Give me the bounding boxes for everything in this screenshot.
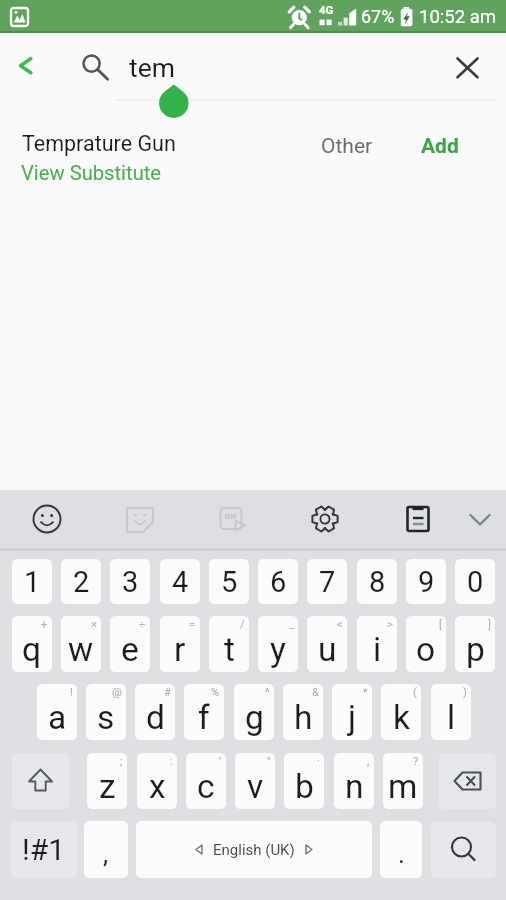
button[interactable]: Backspace [439,753,496,809]
staticText: r [174,630,186,669]
button[interactable]: " [235,753,275,809]
staticText: View Substitute [21,161,162,185]
staticText: s [97,698,115,737]
button[interactable]: & [283,684,323,740]
button[interactable]: ; [87,753,127,809]
staticText: , [367,755,370,768]
button[interactable]: < [307,616,347,672]
button[interactable]: Shift [12,753,69,809]
button[interactable]: * [332,684,372,740]
button[interactable]: : [137,753,177,809]
button[interactable]: ! [37,684,77,740]
button[interactable]: 8 [357,559,397,604]
staticText: ? [413,755,419,768]
staticText: g [245,698,264,737]
staticText: l [447,698,456,737]
staticText: q [22,630,42,669]
staticText: m [388,767,418,806]
button[interactable]: Hide keyboard [457,496,503,542]
button[interactable]: 9 [406,559,446,604]
staticText: : [170,755,173,768]
button[interactable]: 4 [160,559,200,604]
button[interactable]: / [209,616,249,672]
button[interactable]: Clear search [447,47,488,88]
button[interactable]: = [160,616,200,672]
staticText: f [198,698,210,737]
staticText: i [373,630,382,669]
staticText: 8 [369,565,386,599]
staticText: . [398,839,405,869]
staticText: 0 [467,565,484,599]
button[interactable]: ] [455,616,495,672]
staticText: < [337,618,343,631]
staticText: 5 [221,565,238,599]
staticText: , [103,839,109,869]
staticText: · [317,755,320,768]
button[interactable]: 7 [307,559,347,604]
staticText: 67% [361,6,395,27]
staticText: 10:52 am [419,6,496,28]
button[interactable]: # [135,684,175,740]
button[interactable]: ? [383,753,423,809]
button[interactable]: 2 [61,559,101,604]
staticText: o [416,630,436,669]
button[interactable]: % [184,684,224,740]
staticText: " [267,755,271,768]
button[interactable]: !#1 [11,821,77,878]
button[interactable]: English (UK) [136,821,372,878]
button[interactable]: 3 [110,559,150,604]
staticText: English (UK) [213,841,295,859]
button[interactable]: ÷ [110,616,150,672]
staticText: ’ [219,755,222,768]
staticText: u [318,630,337,669]
staticText: 2 [73,565,90,599]
button[interactable]: 1 [12,559,52,604]
button[interactable]: 6 [258,559,298,604]
staticText: v [247,767,264,806]
button[interactable]: Add [415,128,475,160]
button[interactable]: > [357,616,397,672]
button[interactable]: 0 [455,559,495,604]
button[interactable]: 5 [209,559,249,604]
button[interactable]: ^ [234,684,274,740]
button[interactable]: Stickers [117,496,163,542]
staticText: t [224,630,235,669]
staticText: 4 [172,565,189,599]
button[interactable]: Search [431,821,496,878]
staticText: @ [112,686,122,699]
button[interactable]: GIF [209,496,255,542]
button[interactable]: Temprature Gun [0,128,506,198]
staticText: * [363,686,368,699]
button[interactable]: Emoji [24,496,70,542]
staticText: > [387,618,393,631]
button[interactable]: ) [431,684,471,740]
button[interactable]: . [380,821,422,878]
button[interactable]: Clipboard [395,496,441,542]
button[interactable]: + [12,616,52,672]
button[interactable]: Settings [302,496,348,542]
button[interactable]: Back [5,32,46,73]
button[interactable]: [ [406,616,446,672]
button[interactable]: × [61,616,101,672]
staticText: ( [413,686,417,699]
staticText: ) [463,686,467,699]
staticText: !#1 [22,832,66,867]
staticText: e [121,630,139,669]
button[interactable]: _ [258,616,298,672]
button[interactable]: ’ [186,753,226,809]
button[interactable]: , [334,753,374,809]
staticText: × [91,618,97,631]
staticText: c [197,767,215,806]
staticText: # [164,686,171,699]
staticText: d [146,698,165,737]
staticText: + [41,618,48,631]
button[interactable]: , [84,821,128,878]
staticText: tem [129,52,175,83]
button[interactable]: · [284,753,324,809]
staticText: 3 [122,565,139,599]
staticText: 9 [418,565,435,599]
staticText: % [211,686,220,699]
button[interactable]: ( [381,684,421,740]
staticText: = [189,618,196,631]
button[interactable]: @ [86,684,126,740]
